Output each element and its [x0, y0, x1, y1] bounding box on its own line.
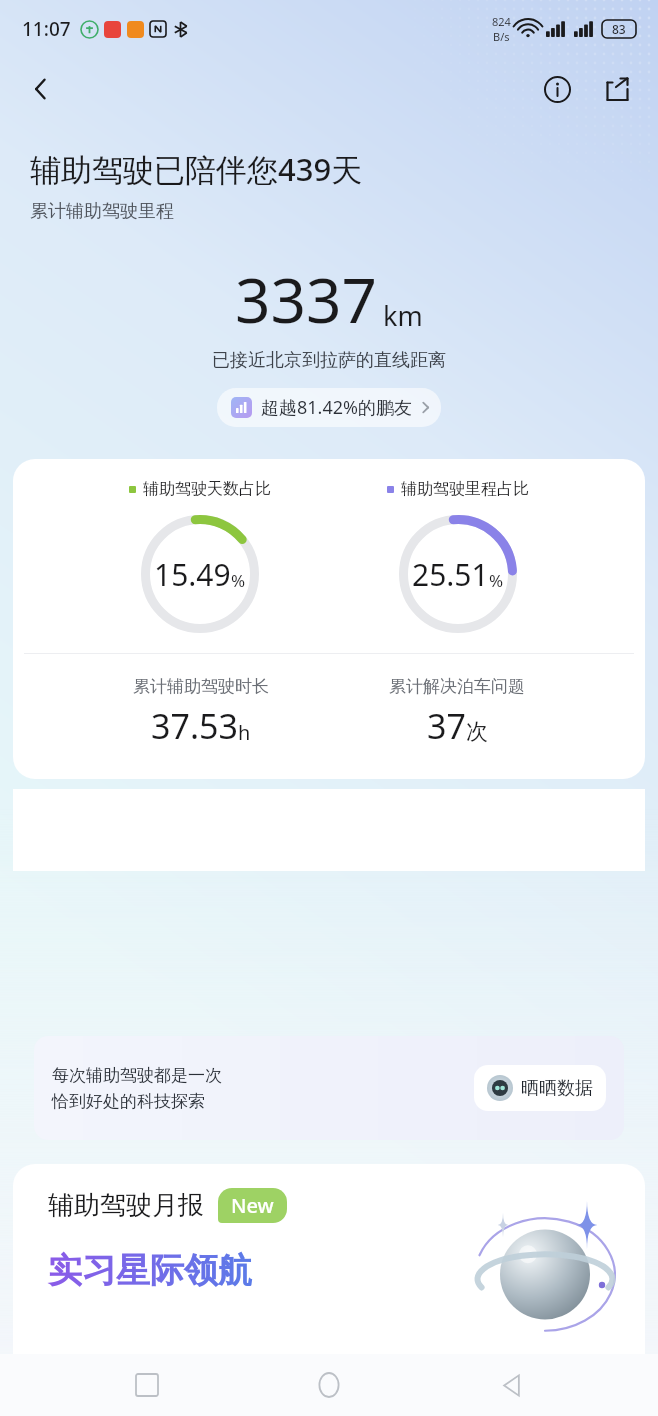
button[interactable]: Home: [294, 1354, 364, 1416]
staticText: 11:07: [22, 16, 71, 42]
staticText: 辅助驾驶天数占比: [143, 479, 271, 499]
staticText: h: [238, 719, 251, 746]
staticText: %: [489, 569, 504, 592]
button[interactable]: 晒晒数据: [474, 1065, 606, 1111]
staticText: 83: [612, 21, 626, 37]
staticText: 辅助驾驶已陪伴您439天: [30, 148, 363, 190]
button[interactable]: Back: [476, 1354, 546, 1416]
staticText: 晒晒数据: [521, 1077, 593, 1100]
button[interactable]: 每次辅助驾驶都是一次恰到好处的科技探索: [34, 1036, 624, 1140]
staticText: 累计辅助驾驶里程: [30, 200, 174, 223]
button[interactable]: Recents: [112, 1354, 182, 1416]
staticText: 每次辅助驾驶都是一次恰到好处的科技探索: [52, 1065, 228, 1112]
staticText: 3337: [235, 257, 377, 341]
staticText: 累计解决泊车问题: [389, 676, 525, 697]
staticText: 15.49: [154, 554, 231, 595]
staticText: 37.53: [151, 703, 238, 749]
button[interactable]: Back: [18, 66, 64, 112]
staticText: 辅助驾驶里程占比: [401, 479, 529, 499]
staticText: 37: [427, 703, 466, 749]
staticText: km: [383, 297, 423, 334]
staticText: New: [231, 1192, 274, 1219]
staticText: 25.51: [412, 554, 489, 595]
staticText: 次: [466, 718, 488, 746]
button[interactable]: Share: [594, 66, 640, 112]
staticText: 超越81.42%的鹏友: [261, 395, 412, 420]
staticText: 已接近北京到拉萨的直线距离: [0, 349, 658, 372]
button[interactable]: 辅助驾驶月报: [13, 1164, 645, 1384]
staticText: 辅助驾驶月报: [48, 1189, 204, 1222]
button[interactable]: 超越81.42%的鹏友: [217, 388, 441, 427]
staticText: B/s: [493, 29, 510, 44]
button[interactable]: Info: [534, 66, 580, 112]
staticText: 实习星际领航: [48, 1249, 252, 1292]
staticText: 累计辅助驾驶时长: [133, 676, 269, 697]
staticText: 824: [492, 14, 511, 29]
staticText: %: [231, 569, 246, 592]
